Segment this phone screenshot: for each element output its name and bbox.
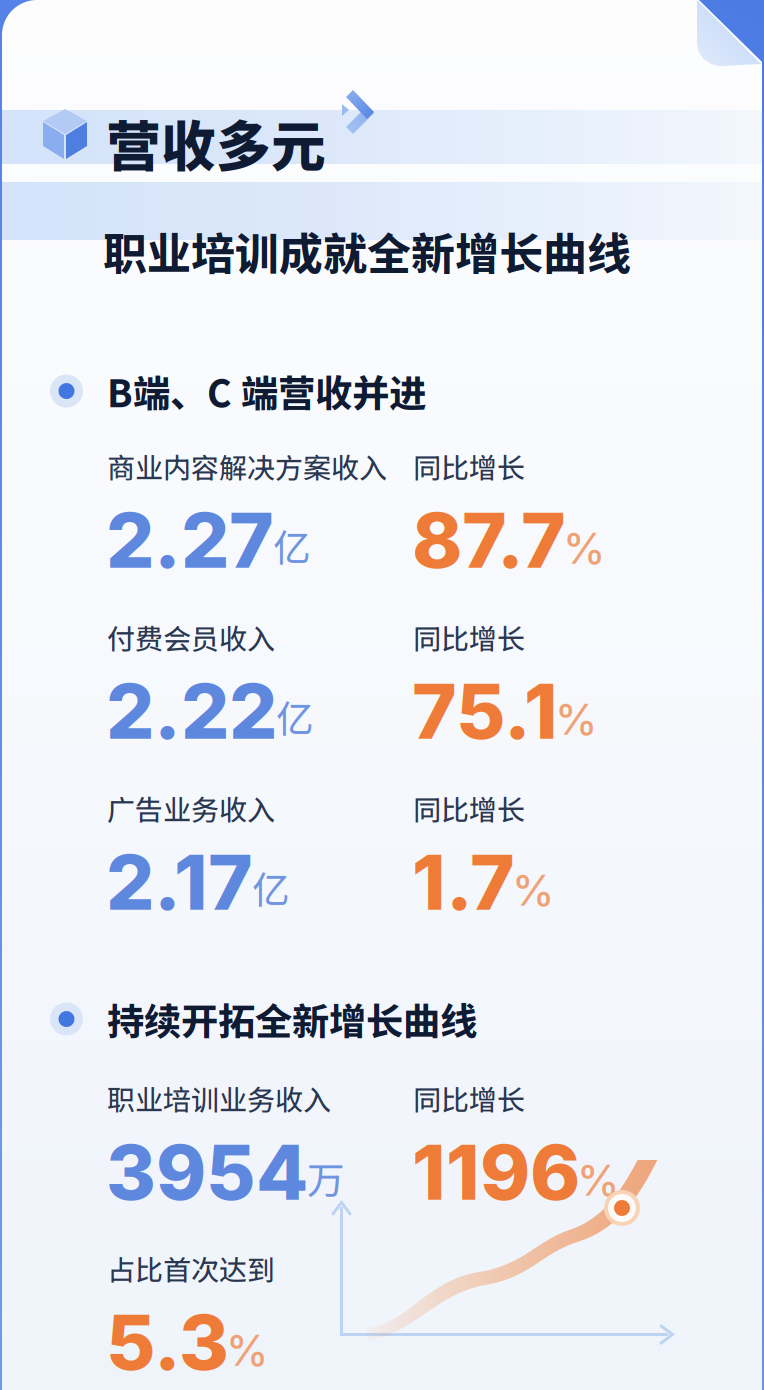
staticText: 亿 [252,860,289,914]
staticText: 5.3 [106,1296,229,1388]
staticText: 1.7 [412,836,515,928]
staticText: 2.22 [106,665,277,757]
staticText: B端、C 端营收并进 [107,364,426,418]
staticText: 广告业务收入 [107,788,275,828]
staticText: 1196 [412,1126,580,1218]
staticText: 同比增长 [413,788,525,828]
staticText: 持续开拓全新增长曲线 [107,992,477,1046]
staticText: 营收多元 [106,103,326,182]
staticText: % [226,1324,268,1376]
staticText: 万 [307,1150,344,1204]
staticText: 职业培训业务收入 [107,1078,331,1118]
staticText: 同比增长 [413,1078,525,1118]
staticText: 占比首次达到 [107,1248,275,1288]
staticText: 2.17 [106,836,253,928]
staticText: 3954 [106,1126,308,1218]
staticText: % [555,693,597,745]
staticText: 商业内容解决方案收入 [107,446,387,486]
staticText: 75.1 [412,665,558,757]
staticText: 2.27 [106,494,274,586]
staticText: 付费会员收入 [107,617,275,657]
staticText: % [577,1154,619,1206]
staticText: % [512,864,554,916]
staticText: 职业培训成就全新增长曲线 [103,219,631,283]
staticText: 亿 [276,689,313,743]
staticText: % [563,522,605,574]
staticText: 亿 [273,518,310,572]
staticText: 87.7 [412,494,566,586]
staticText: 同比增长 [413,446,525,486]
staticText: 同比增长 [413,617,525,657]
